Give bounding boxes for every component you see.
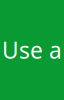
staticText: Use a (2, 35, 62, 65)
